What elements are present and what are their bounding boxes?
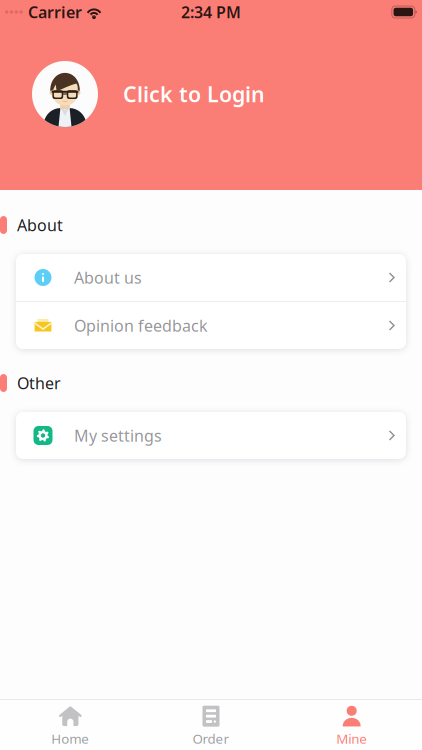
staticText: Click to Login: [123, 80, 265, 108]
button[interactable]: Order: [141, 700, 281, 750]
staticText: Other: [17, 372, 61, 394]
button[interactable]: Opinion feedback: [16, 302, 406, 349]
button[interactable]: About us: [16, 254, 406, 301]
button[interactable]: Home: [0, 700, 141, 750]
button[interactable]: Mine: [281, 700, 422, 750]
staticText: About us: [74, 267, 142, 288]
staticText: Carrier: [28, 1, 82, 23]
staticText: Order: [192, 730, 229, 747]
staticText: About: [17, 214, 63, 236]
staticText: Mine: [336, 730, 367, 747]
staticText: Home: [51, 730, 89, 747]
button[interactable]: Click to Login: [0, 49, 422, 139]
staticText: 2:34 PM: [181, 1, 241, 23]
staticText: Opinion feedback: [74, 315, 208, 336]
button[interactable]: My settings: [16, 412, 406, 459]
staticText: My settings: [74, 425, 162, 446]
